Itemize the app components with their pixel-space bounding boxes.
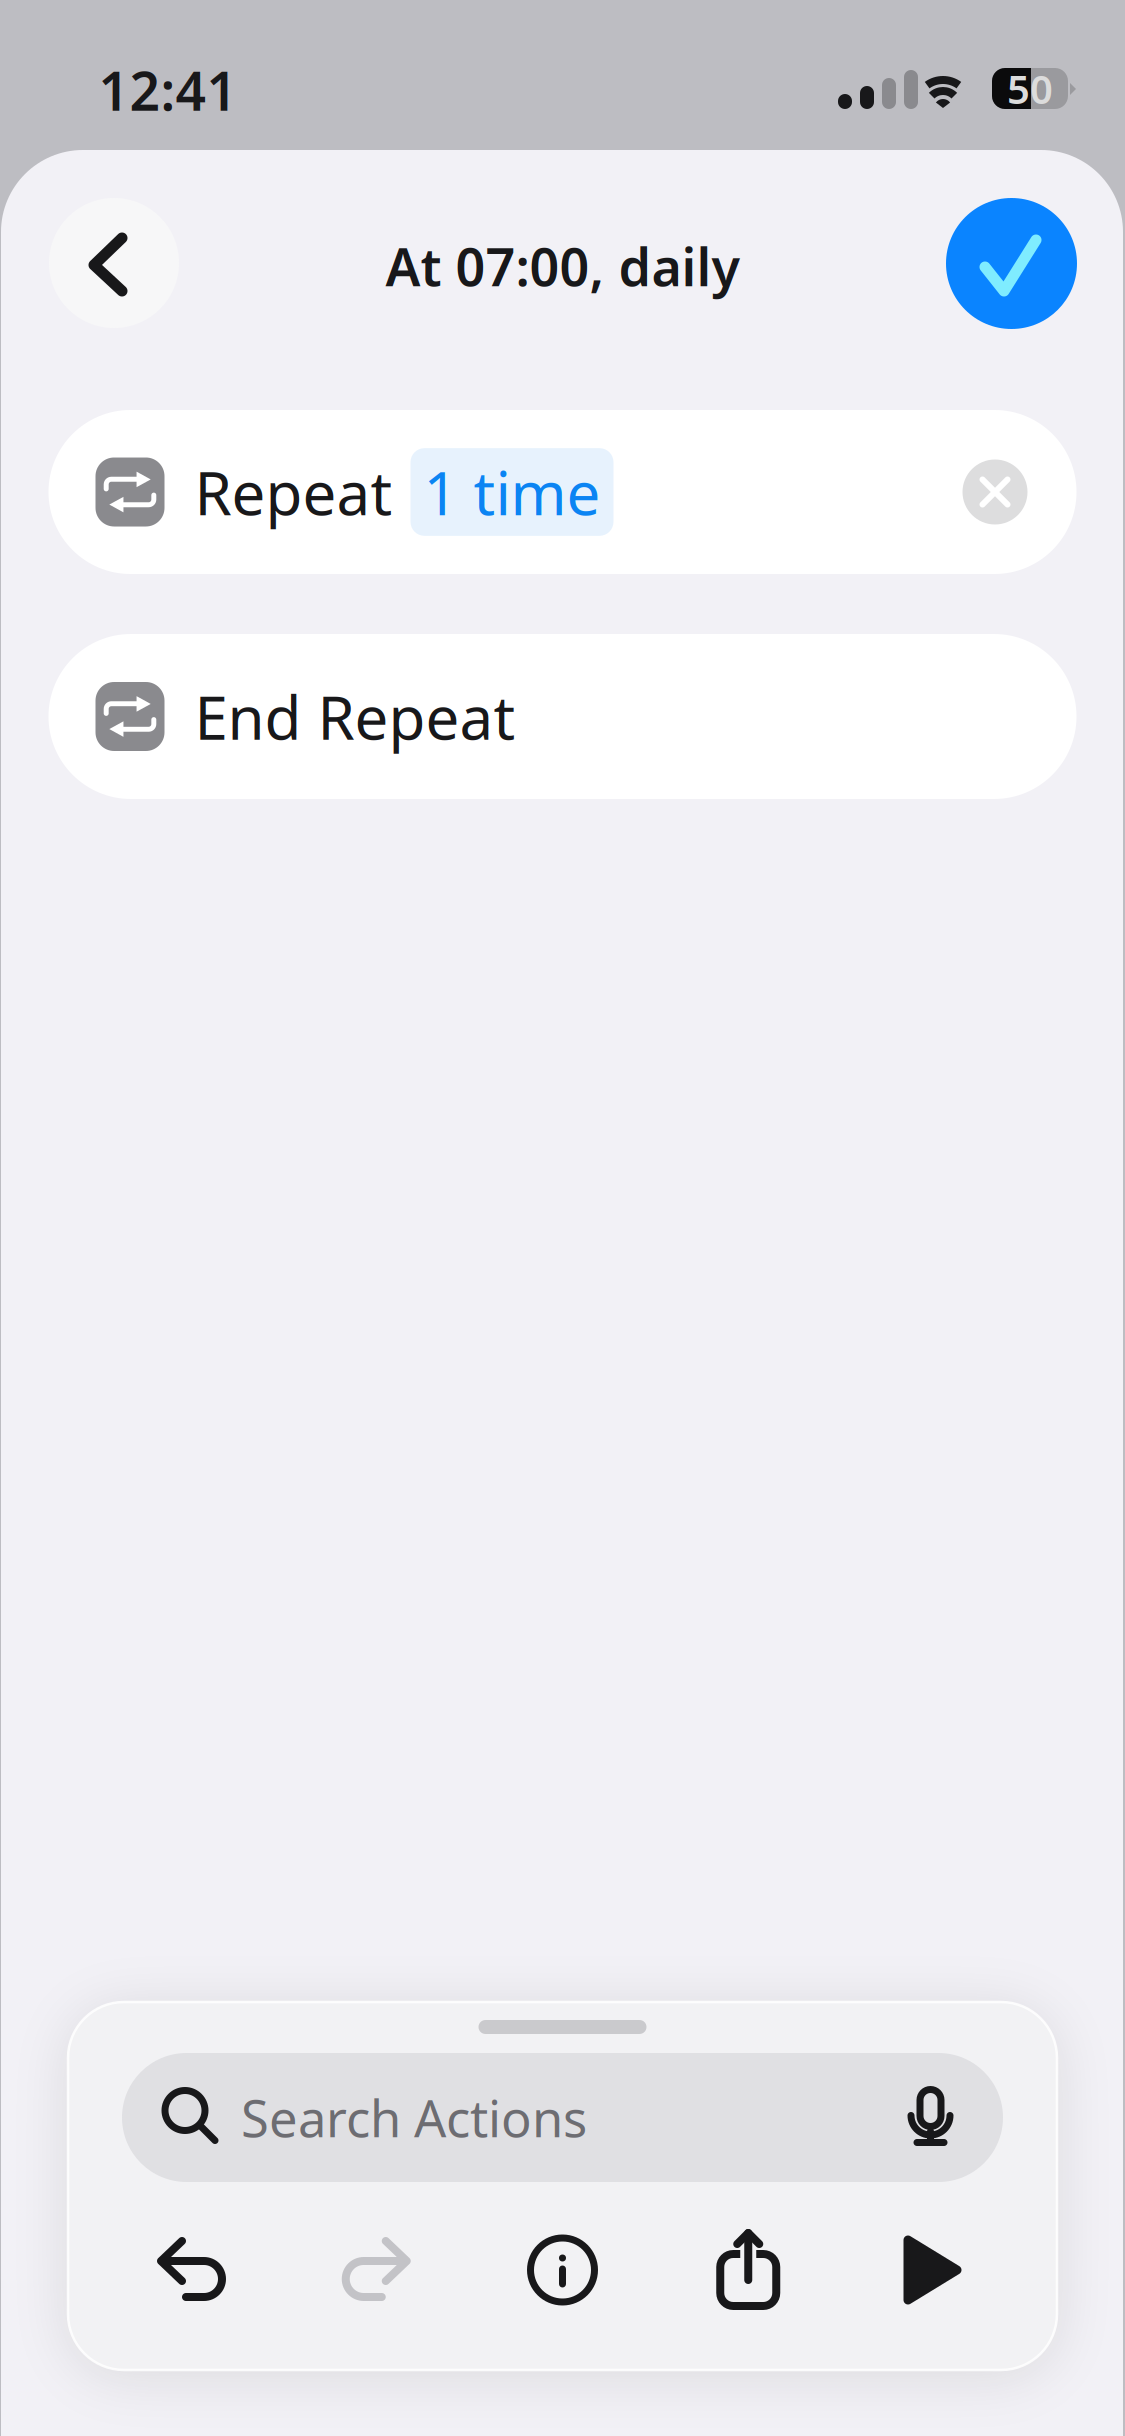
- staticText: Repeat: [194, 452, 392, 532]
- staticText: 12:41: [98, 55, 237, 125]
- button[interactable]: Remove action: [962, 459, 1027, 524]
- staticText: End Repeat: [194, 677, 515, 756]
- button[interactable]: Repeat: [48, 410, 1076, 574]
- button[interactable]: Done: [946, 198, 1077, 329]
- button[interactable]: Search Actions: [122, 2053, 1003, 2182]
- button[interactable]: Share: [688, 2222, 808, 2318]
- button[interactable]: Redo: [317, 2222, 437, 2318]
- button[interactable]: Run: [874, 2222, 994, 2318]
- button[interactable]: Back: [49, 198, 179, 328]
- staticText: 50: [1007, 62, 1053, 115]
- staticText: At 07:00, daily: [385, 231, 739, 301]
- staticText: Search Actions: [241, 2084, 587, 2151]
- button[interactable]: Details: [502, 2222, 622, 2318]
- button[interactable]: Undo: [131, 2222, 251, 2318]
- button[interactable]: End Repeat: [48, 634, 1076, 799]
- staticText: 1 time: [423, 452, 600, 532]
